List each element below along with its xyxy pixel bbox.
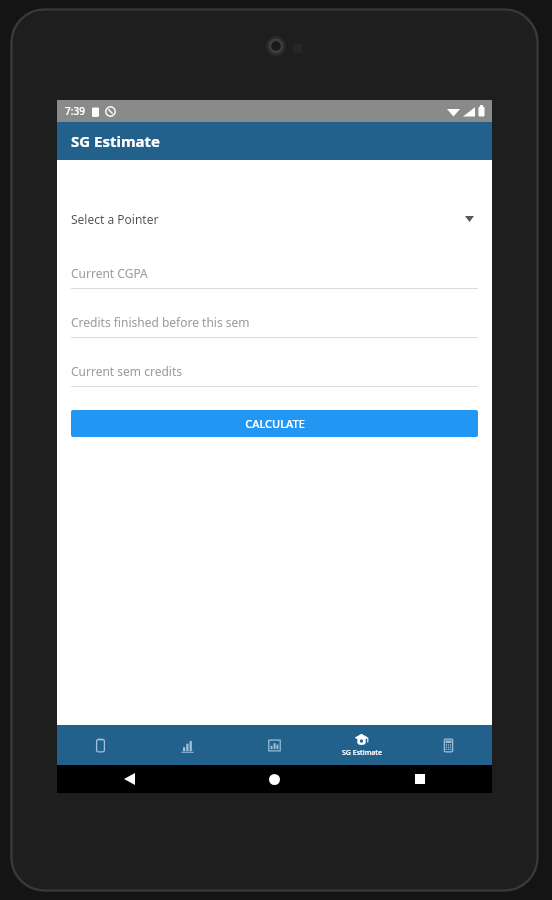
button[interactable]: Select a Pointer [71,202,478,236]
button[interactable]: Calculator [405,725,492,765]
button[interactable]: Current sem credits [71,356,478,387]
button[interactable]: Current CGPA [71,258,478,289]
button[interactable]: Chart [231,725,318,765]
staticText: SG Estimate [71,131,161,151]
staticText: CALCULATE [245,416,305,431]
button[interactable]: Home [202,765,347,793]
button[interactable]: Recent apps [347,765,492,793]
button[interactable]: Notes [57,725,144,765]
button[interactable]: Back [57,765,202,793]
staticText: Credits finished before this sem [71,314,250,330]
staticText: Select a Pointer [71,211,159,227]
staticText: Current CGPA [71,265,148,281]
button[interactable]: Stats [144,725,231,765]
button[interactable]: SG Estimate [318,725,405,765]
staticText: Current sem credits [71,363,182,379]
button[interactable]: CALCULATE [71,410,478,437]
button[interactable]: Credits finished before this sem [71,307,478,338]
staticText: SG Estimate [342,748,382,758]
staticText: 7:39 [65,104,85,118]
